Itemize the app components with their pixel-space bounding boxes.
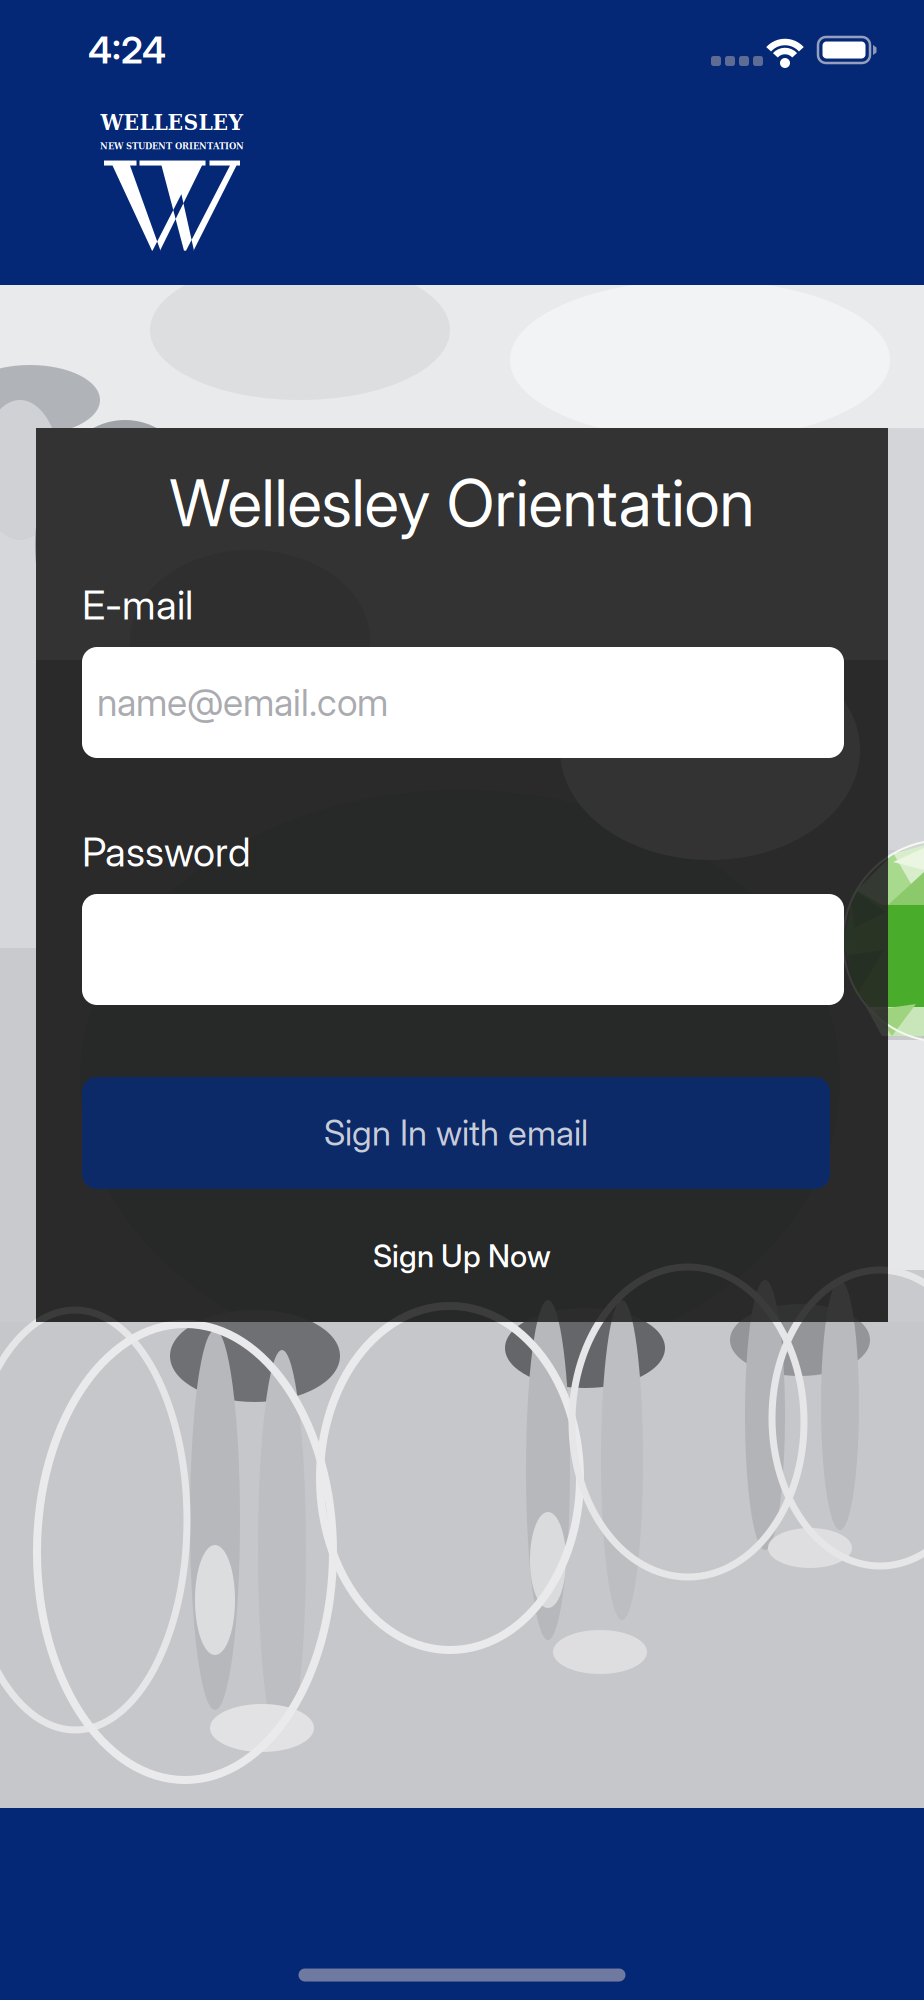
staticText: WELLESLEY [100, 109, 243, 135]
staticText: E-mail [82, 581, 193, 629]
button[interactable]: Sign Up Now [373, 1237, 551, 1274]
staticText: NEW STUDENT ORIENTATION [100, 140, 244, 151]
staticText: Password [82, 828, 251, 876]
staticText: Wellesley Orientation [169, 464, 754, 542]
button[interactable]: Sign In with email [82, 1077, 830, 1189]
staticText: 4:24 [88, 27, 166, 73]
staticText: Sign Up Now [373, 1237, 551, 1274]
staticText: name@email.com [97, 680, 388, 725]
staticText: Sign In with email [324, 1112, 588, 1154]
